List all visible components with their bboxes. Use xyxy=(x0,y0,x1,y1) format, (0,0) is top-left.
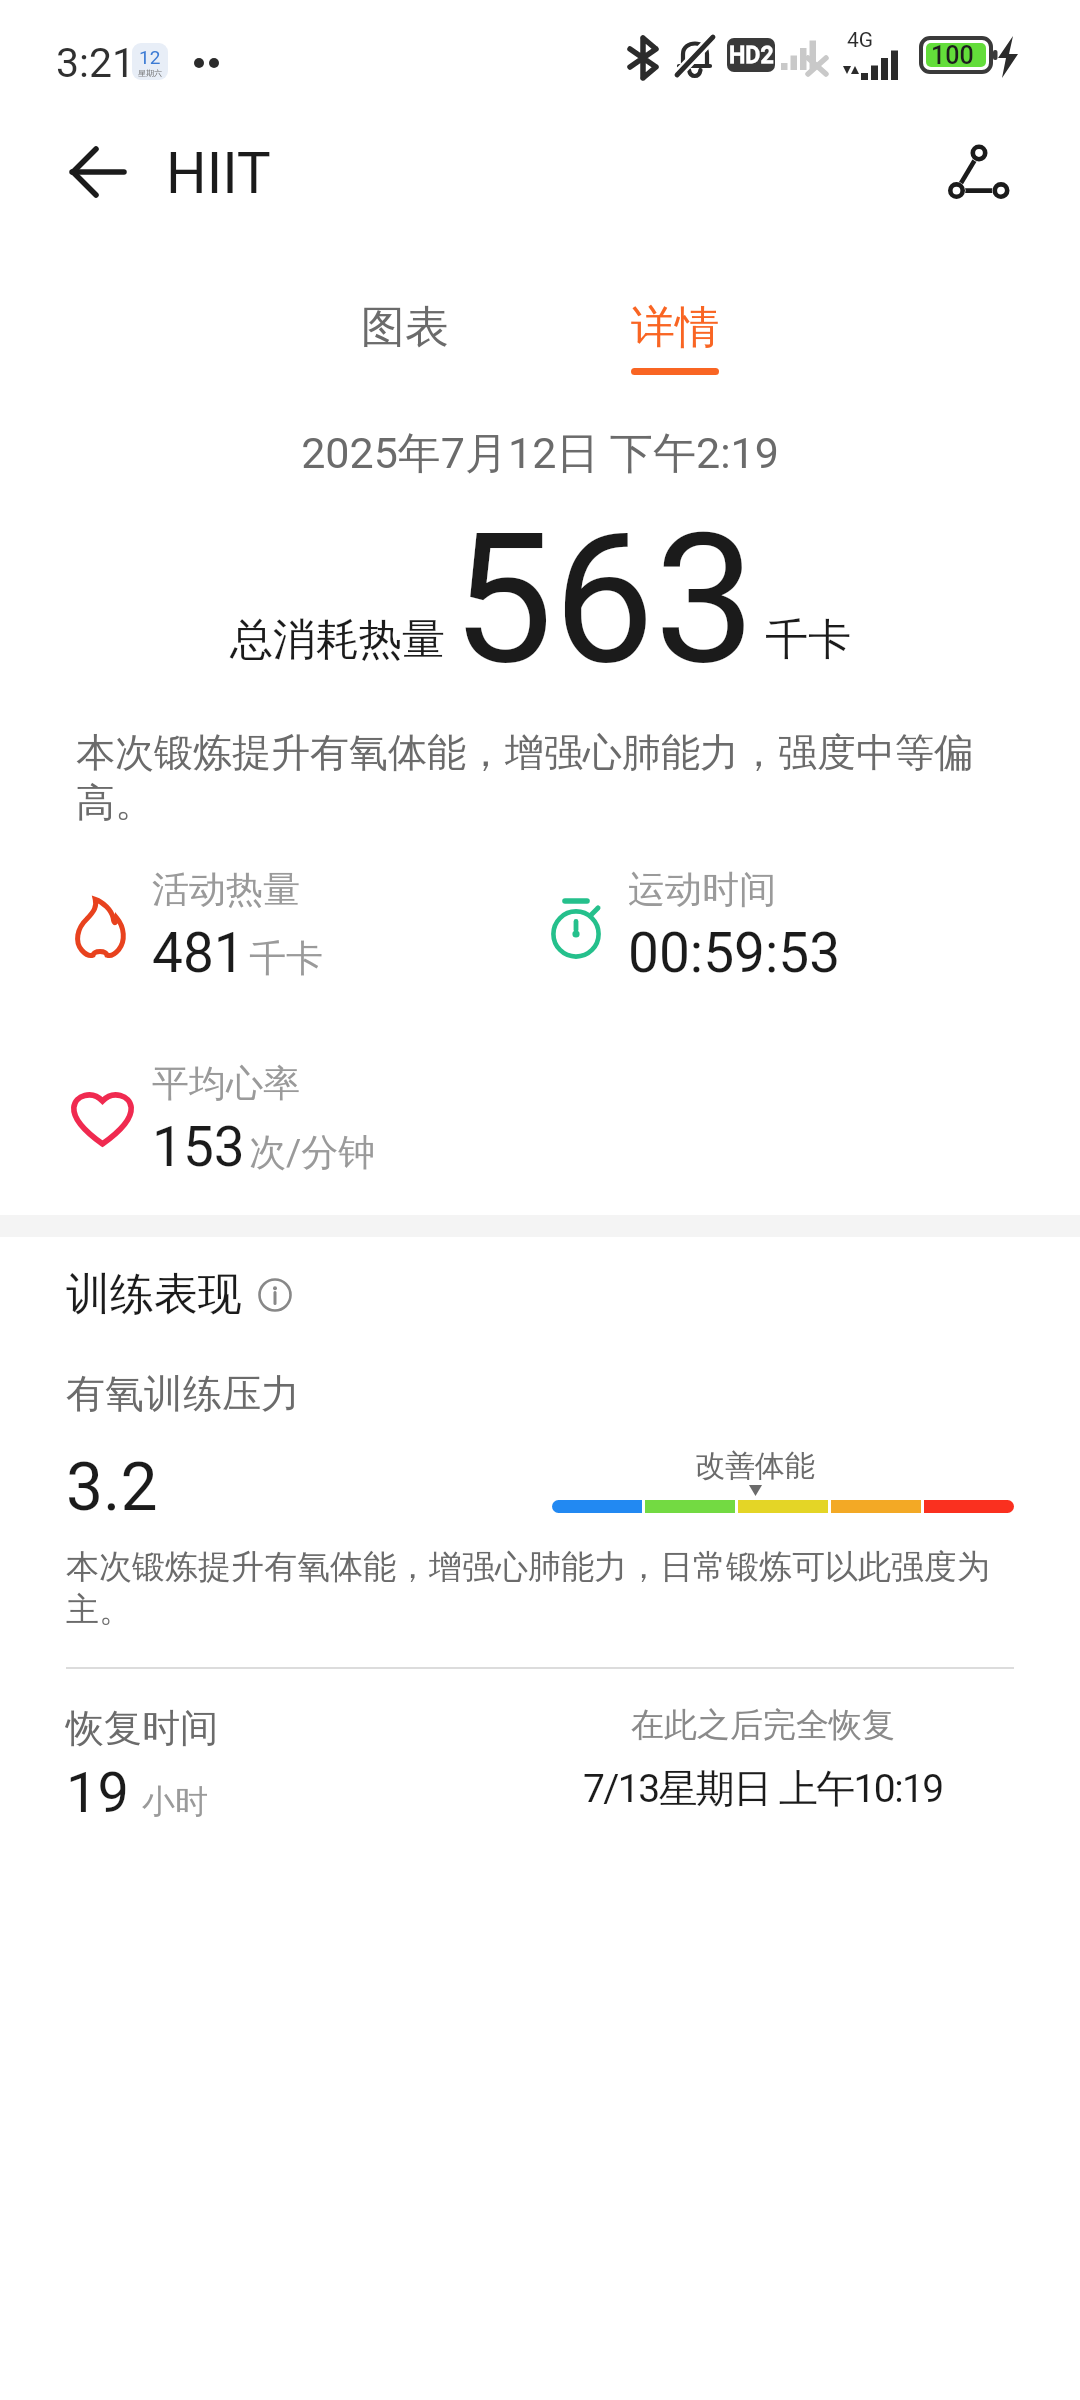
button[interactable]: Back xyxy=(44,118,152,226)
staticText: 图表 xyxy=(361,300,449,355)
button[interactable]: 平均心率 xyxy=(72,1060,540,1179)
staticText: 3.2 xyxy=(66,1449,158,1526)
staticText: HIIT xyxy=(166,140,271,207)
staticText: 恢复时间 xyxy=(66,1704,218,1752)
staticText: 千卡 xyxy=(765,613,851,667)
staticText: 训练表现 xyxy=(66,1267,242,1322)
staticText: 2025年7月12日 下午2:19 xyxy=(0,427,1080,481)
staticText: 153 xyxy=(152,1115,245,1179)
staticText: 481 xyxy=(152,921,245,985)
staticText: 星期六 xyxy=(138,68,162,78)
staticText: 100 xyxy=(931,41,974,70)
button[interactable]: 训练表现 xyxy=(66,1267,292,1322)
button[interactable]: 图表 xyxy=(270,300,540,400)
staticText: 千卡 xyxy=(249,935,323,982)
staticText: 在此之后完全恢复 xyxy=(631,1704,895,1746)
staticText: 活动热量 xyxy=(152,866,300,913)
staticText: 3:21 xyxy=(56,39,136,87)
staticText: 次/分钟 xyxy=(249,1129,376,1176)
staticText: 平均心率 xyxy=(152,1060,300,1107)
button[interactable]: 活动热量 xyxy=(72,866,540,985)
staticText: 运动时间 xyxy=(628,866,776,913)
button[interactable]: 详情 xyxy=(540,300,810,400)
staticText: 改善体能 xyxy=(695,1447,815,1485)
button[interactable]: 运动时间 xyxy=(548,866,1080,985)
button[interactable]: Share xyxy=(926,118,1034,226)
staticText: 00:59:53 xyxy=(628,921,841,985)
staticText: 12 xyxy=(139,46,161,68)
staticText: 563 xyxy=(452,494,756,705)
staticText: 小时 xyxy=(142,1781,208,1823)
staticText: 本次锻炼提升有氧体能，增强心肺能力，日常锻炼可以此强度为主。 xyxy=(66,1546,1024,1631)
staticText: HD2 xyxy=(729,42,774,69)
staticText: 详情 xyxy=(631,300,719,355)
staticText: 本次锻炼提升有氧体能，增强心肺能力，强度中等偏高。 xyxy=(76,728,1020,828)
staticText: 7/13星期日 上午10:19 xyxy=(583,1764,943,1813)
staticText: 19 xyxy=(66,1760,129,1826)
staticText: 4G xyxy=(847,28,874,53)
staticText: 有氧训练压力 xyxy=(66,1369,300,1418)
staticText: 总消耗热量 xyxy=(230,613,445,667)
